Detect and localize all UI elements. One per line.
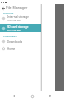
button[interactable]: Back <box>10 92 18 100</box>
button[interactable]: Home <box>0 45 41 52</box>
staticText: Internal storage <box>7 15 29 19</box>
staticText: 18.23 GB free <box>7 19 21 22</box>
button[interactable]: Internal storage <box>0 15 41 22</box>
staticText: Downloads <box>7 40 23 44</box>
button[interactable]: Home <box>28 92 36 100</box>
staticText: STORAGE <box>3 12 14 15</box>
staticText: File Manager <box>6 5 28 10</box>
button[interactable]: Downloads <box>0 38 41 45</box>
staticText: 52.14 GB free <box>7 29 21 32</box>
button[interactable]: SD card storage <box>0 24 41 32</box>
button[interactable]: Recents <box>46 92 54 100</box>
button[interactable]: Back <box>0 5 6 11</box>
staticText: SD card storage <box>7 25 29 29</box>
staticText: Home <box>7 47 16 51</box>
staticText: CATEGORIES <box>3 35 17 38</box>
